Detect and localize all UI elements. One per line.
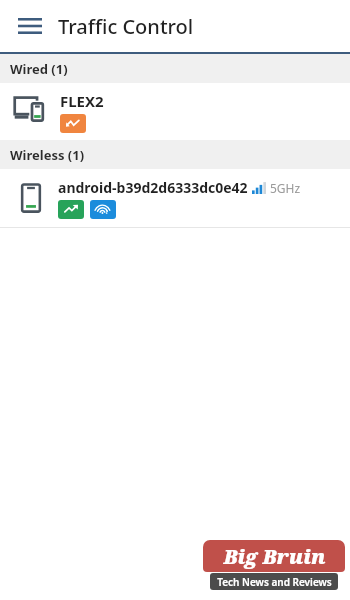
button[interactable]: Big Bruin - Tech News and Reviews	[203, 540, 345, 590]
staticText: Wired (1)	[10, 60, 68, 78]
button[interactable]: Wi-Fi details	[90, 200, 116, 219]
staticText: android-b39d2d6333dc0e42	[58, 178, 248, 197]
button[interactable]: Open navigation menu	[12, 8, 48, 44]
staticText: 5GHz	[270, 180, 301, 196]
button[interactable]: Traffic up	[58, 200, 84, 219]
button[interactable]: android-b39d2d6333dc0e42	[0, 169, 350, 227]
staticText: Wireless (1)	[10, 146, 85, 164]
button[interactable]: Traffic history	[60, 114, 86, 133]
staticText: Traffic Control	[58, 13, 194, 40]
staticText: Big Bruin	[223, 543, 326, 570]
staticText: Tech News and Reviews	[217, 575, 332, 589]
button[interactable]: FLEX2	[0, 83, 350, 140]
staticText: FLEX2	[60, 91, 104, 111]
